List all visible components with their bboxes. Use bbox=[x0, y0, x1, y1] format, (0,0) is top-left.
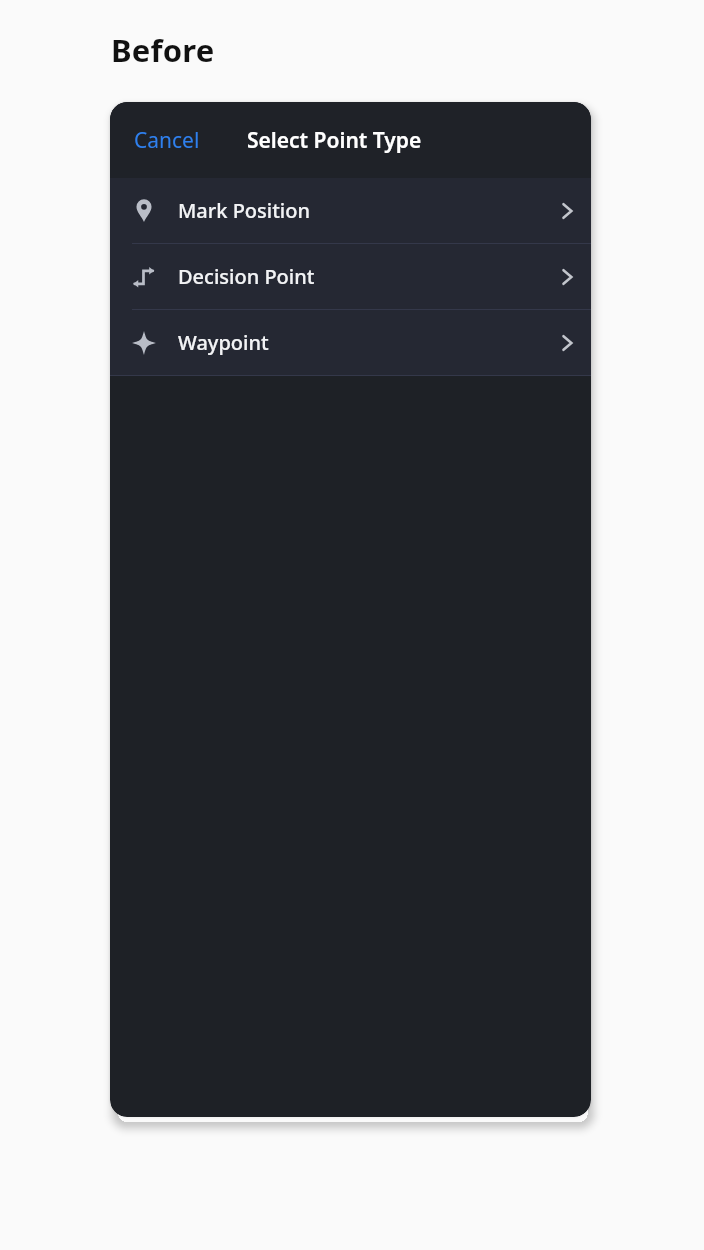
button[interactable]: Cancel bbox=[122, 118, 212, 163]
staticText: Mark Position bbox=[178, 197, 543, 224]
button[interactable]: Decision Point bbox=[110, 244, 591, 309]
button[interactable]: Mark Position bbox=[110, 178, 591, 243]
staticText: Select Point Type bbox=[247, 126, 422, 155]
staticText: Decision Point bbox=[178, 263, 543, 290]
button[interactable]: Waypoint bbox=[110, 310, 591, 375]
staticText: Cancel bbox=[134, 126, 200, 155]
staticText: Before bbox=[111, 29, 215, 71]
staticText: Waypoint bbox=[178, 329, 543, 356]
